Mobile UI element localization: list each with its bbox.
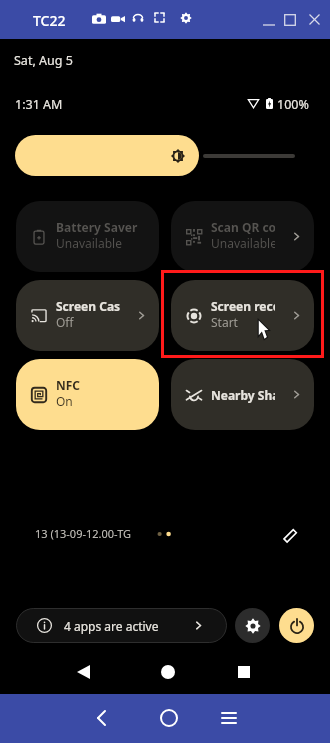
button[interactable]: Record screen <box>111 12 125 26</box>
button[interactable]: Back <box>88 694 330 743</box>
staticText: Nearby Share <box>211 387 275 403</box>
button[interactable]: NFC <box>16 359 159 430</box>
button[interactable]: Power <box>279 608 314 643</box>
staticText: Off <box>56 314 74 330</box>
staticText: NFC <box>56 377 81 393</box>
button[interactable]: Nearby Share <box>171 359 314 430</box>
staticText: TC22 <box>33 11 66 30</box>
staticText: Scan QR code <box>211 219 275 235</box>
button[interactable]: Screen recorder <box>171 280 314 351</box>
staticText: 4 apps are active <box>64 618 159 634</box>
button[interactable]: 4 apps are active <box>16 608 227 643</box>
button[interactable]: Screen Cast <box>16 280 159 351</box>
button[interactable]: Screenshot <box>92 12 106 26</box>
button[interactable]: Settings <box>180 12 192 24</box>
button[interactable]: Battery Saver <box>16 201 159 272</box>
staticText: 13 (13-09-12.00-TG <box>35 526 132 541</box>
staticText: 100% <box>277 96 309 113</box>
staticText: Start <box>211 314 238 330</box>
button[interactable]: Edit tiles <box>280 524 301 545</box>
button[interactable]: Menu <box>215 694 330 743</box>
staticText: On <box>56 393 73 409</box>
button[interactable]: Close <box>309 14 320 25</box>
staticText: Unavailable <box>56 235 122 251</box>
button[interactable]: Audio <box>132 12 144 24</box>
button[interactable]: Minimize <box>263 14 275 26</box>
staticText: Screen Cast <box>56 298 120 314</box>
staticText: Unavailable <box>211 235 275 251</box>
staticText: Sat, Aug 5 <box>14 52 73 69</box>
button[interactable]: Brightness <box>15 135 199 176</box>
staticText: 1:31 AM <box>15 96 63 113</box>
button[interactable]: Fullscreen <box>154 12 165 23</box>
button[interactable]: Settings <box>235 608 270 643</box>
button[interactable]: Maximize <box>284 14 296 26</box>
staticText: Battery Saver <box>56 219 138 235</box>
button[interactable]: Scan QR code <box>171 201 314 272</box>
staticText: Screen recorder <box>211 298 275 314</box>
button[interactable]: Home <box>152 694 330 743</box>
